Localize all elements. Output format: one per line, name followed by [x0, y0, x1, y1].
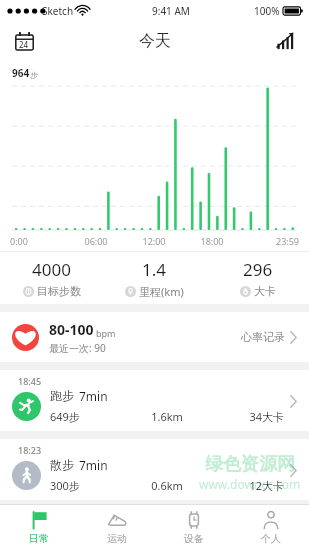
- staticText: 12大卡: [206, 478, 284, 493]
- staticText: 18:45: [18, 375, 42, 387]
- staticText: 绿色资源网: [205, 453, 295, 476]
- button[interactable]: Calendar: [8, 25, 40, 57]
- staticText: 里程(km): [139, 284, 184, 299]
- staticText: 12:00: [125, 235, 183, 247]
- button[interactable]: 4000: [0, 252, 103, 304]
- staticText: 大卡: [254, 284, 276, 298]
- staticText: 心率记录: [241, 330, 285, 344]
- staticText: 296: [243, 258, 273, 281]
- staticText: 散步: [50, 457, 74, 472]
- staticText: 4000: [32, 258, 71, 281]
- staticText: 运动: [107, 532, 127, 545]
- staticText: 0.6km: [128, 478, 206, 493]
- staticText: 步: [30, 70, 38, 80]
- staticText: 9:41 AM: [152, 4, 190, 18]
- staticText: 06:00: [67, 235, 125, 247]
- button[interactable]: 1.4: [103, 252, 206, 304]
- staticText: 个人: [261, 532, 281, 545]
- button[interactable]: 80-100: [0, 312, 309, 362]
- staticText: 1.6km: [128, 409, 206, 424]
- button[interactable]: Statistics: [269, 25, 301, 57]
- staticText: 跑步: [50, 388, 74, 403]
- button[interactable]: 18:45: [0, 370, 309, 431]
- staticText: 300步: [50, 478, 128, 493]
- staticText: www.downcc.com: [199, 476, 301, 492]
- staticText: Sketch: [42, 4, 74, 18]
- staticText: 80-100: [49, 320, 94, 339]
- staticText: 18:23: [18, 444, 42, 456]
- staticText: 34大卡: [206, 409, 284, 424]
- staticText: bpm: [96, 327, 116, 339]
- button[interactable]: 设备: [155, 505, 232, 550]
- staticText: 7min: [79, 388, 108, 404]
- staticText: 目标步数: [37, 284, 81, 298]
- staticText: 24: [19, 39, 29, 50]
- staticText: 18:00: [183, 235, 241, 247]
- staticText: 23:59: [241, 235, 299, 247]
- button[interactable]: 296: [206, 252, 309, 304]
- staticText: 今天: [139, 31, 171, 51]
- button[interactable]: 个人: [232, 505, 309, 550]
- staticText: 964: [12, 66, 30, 80]
- staticText: 1.4: [142, 258, 167, 281]
- staticText: 100%: [254, 4, 280, 18]
- button[interactable]: 日常: [0, 505, 78, 550]
- staticText: 设备: [184, 532, 204, 545]
- button[interactable]: 18:23: [0, 439, 309, 500]
- staticText: 7min: [79, 457, 108, 473]
- staticText: 最近一次: 90: [49, 341, 106, 355]
- staticText: 0:00: [10, 235, 67, 247]
- button[interactable]: 运动: [78, 505, 155, 550]
- staticText: 日常: [29, 532, 49, 545]
- staticText: 649步: [50, 409, 128, 424]
